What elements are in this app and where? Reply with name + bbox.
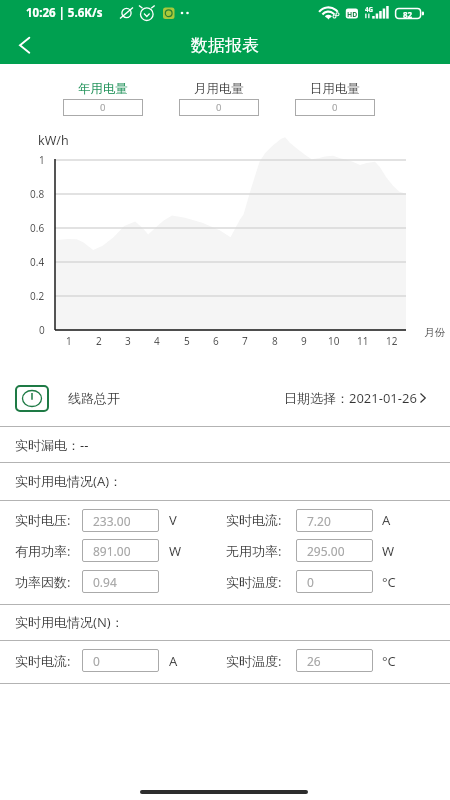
button[interactable]: 年用电量: [63, 81, 143, 116]
staticText: 1: [66, 334, 72, 348]
staticText: °C: [382, 573, 396, 591]
staticText: 26: [307, 653, 321, 669]
staticText: 月份: [424, 326, 445, 339]
staticText: 10: [328, 334, 340, 348]
staticText: 实时用电情况(N)：: [15, 613, 124, 631]
staticText: 233.00: [93, 513, 131, 529]
staticText: 891.00: [93, 543, 131, 559]
staticText: 10:26 | 5.6K/s: [26, 5, 103, 21]
staticText: A: [169, 652, 178, 670]
staticText: 实时温度:: [226, 573, 282, 591]
staticText: 7: [242, 334, 248, 348]
staticText: 2021-01-26: [349, 389, 417, 407]
staticText: 无用功率:: [226, 542, 282, 560]
staticText: 实时电流:: [15, 652, 71, 670]
staticText: 8: [272, 334, 278, 348]
staticText: 功率因数:: [15, 573, 71, 591]
staticText: 5: [184, 334, 190, 348]
staticText: 1: [39, 153, 45, 167]
button[interactable]: 日期选择：: [284, 382, 428, 414]
staticText: 4: [154, 334, 160, 348]
staticText: 日用电量: [295, 81, 375, 97]
button[interactable]: 月用电量: [179, 81, 259, 116]
staticText: 4G: [365, 5, 374, 13]
staticText: 12: [386, 334, 398, 348]
staticText: 线路总开: [68, 390, 120, 406]
staticText: 数据报表: [191, 35, 259, 56]
staticText: 月用电量: [179, 81, 259, 97]
staticText: W: [169, 542, 182, 560]
staticText: 实时用电情况(A)：: [15, 472, 123, 490]
staticText: 日期选择：: [284, 390, 349, 406]
button[interactable]: 线路总开: [15, 382, 120, 414]
staticText: 有用功率:: [15, 542, 71, 560]
staticText: kW/h: [38, 132, 69, 149]
staticText: 0: [307, 574, 314, 590]
staticText: 0.2: [30, 289, 45, 303]
staticText: 2: [96, 334, 102, 348]
staticText: 295.00: [307, 543, 345, 559]
staticText: 0: [100, 101, 106, 114]
staticText: 实时电压:: [15, 511, 71, 529]
staticText: 0: [39, 323, 45, 337]
staticText: 0.94: [93, 574, 117, 590]
staticText: 实时漏电：--: [15, 436, 89, 454]
staticText: 0: [332, 101, 338, 114]
staticText: 11: [357, 334, 369, 348]
staticText: W: [382, 542, 395, 560]
staticText: 0: [93, 653, 100, 669]
staticText: 82: [403, 9, 413, 19]
button[interactable]: Back: [0, 26, 42, 64]
staticText: HD: [347, 10, 358, 19]
button[interactable]: 日用电量: [295, 81, 375, 116]
staticText: A: [382, 511, 391, 529]
staticText: 0: [216, 101, 222, 114]
staticText: 实时温度:: [226, 652, 282, 670]
staticText: 3: [125, 334, 131, 348]
staticText: °C: [382, 652, 396, 670]
staticText: V: [169, 511, 177, 529]
staticText: 6: [213, 334, 219, 348]
staticText: 9: [301, 334, 307, 348]
staticText: 0.4: [30, 255, 45, 269]
staticText: 实时电流:: [226, 511, 282, 529]
staticText: 年用电量: [63, 81, 143, 97]
staticText: 7.20: [307, 513, 331, 529]
staticText: 0.6: [30, 221, 45, 235]
staticText: 0.8: [30, 187, 45, 201]
